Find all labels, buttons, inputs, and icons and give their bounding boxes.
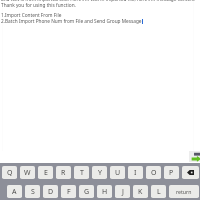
button[interactable]: G — [79, 185, 94, 198]
staticText: 2.Batch Import Phone Num from File and S… — [1, 18, 142, 24]
button[interactable]: E — [38, 166, 53, 179]
staticText: R — [61, 168, 66, 178]
button[interactable]: A — [7, 185, 22, 198]
staticText: S — [31, 187, 35, 197]
staticText: return — [176, 188, 192, 195]
staticText: U — [115, 168, 121, 178]
button[interactable]: U — [110, 166, 125, 179]
staticText: L — [157, 187, 161, 197]
staticText: A — [12, 187, 17, 197]
button[interactable]: Backspace — [182, 166, 199, 179]
button[interactable]: K — [133, 185, 148, 198]
staticText: 1.Import Content From File — [1, 12, 62, 18]
staticText: I — [134, 168, 137, 178]
button[interactable]: L — [151, 185, 166, 198]
button[interactable]: Y — [92, 166, 107, 179]
button[interactable]: Q — [2, 166, 17, 179]
button[interactable]: P — [164, 166, 179, 179]
button[interactable]: I — [128, 166, 143, 179]
button[interactable]: Message text field — [2, 0, 194, 151]
button[interactable]: H — [97, 185, 112, 198]
button[interactable]: J — [115, 185, 130, 198]
staticText: Q — [7, 168, 13, 178]
button[interactable]: F — [61, 185, 76, 198]
staticText: Y — [98, 168, 102, 178]
staticText: W — [24, 168, 31, 178]
staticText: Thank you for using this function. — [1, 2, 76, 8]
staticText: D — [48, 187, 54, 197]
button[interactable]: R — [56, 166, 71, 179]
staticText: G — [84, 187, 90, 197]
staticText: P — [169, 168, 174, 178]
button[interactable]: T — [74, 166, 89, 179]
staticText: E — [44, 168, 48, 178]
button[interactable]: Send — [189, 151, 200, 162]
staticText: H — [102, 187, 108, 197]
staticText: and text is from imported text. Here I'm… — [1, 0, 195, 2]
button[interactable]: W — [20, 166, 35, 179]
staticText: T — [80, 168, 84, 178]
staticText: F — [67, 187, 71, 197]
button[interactable]: return — [169, 185, 199, 198]
button[interactable]: S — [25, 185, 40, 198]
staticText: J — [122, 187, 124, 197]
staticText: K — [138, 187, 143, 197]
button[interactable]: D — [43, 185, 58, 198]
staticText: O — [151, 168, 157, 178]
button[interactable]: O — [146, 166, 161, 179]
